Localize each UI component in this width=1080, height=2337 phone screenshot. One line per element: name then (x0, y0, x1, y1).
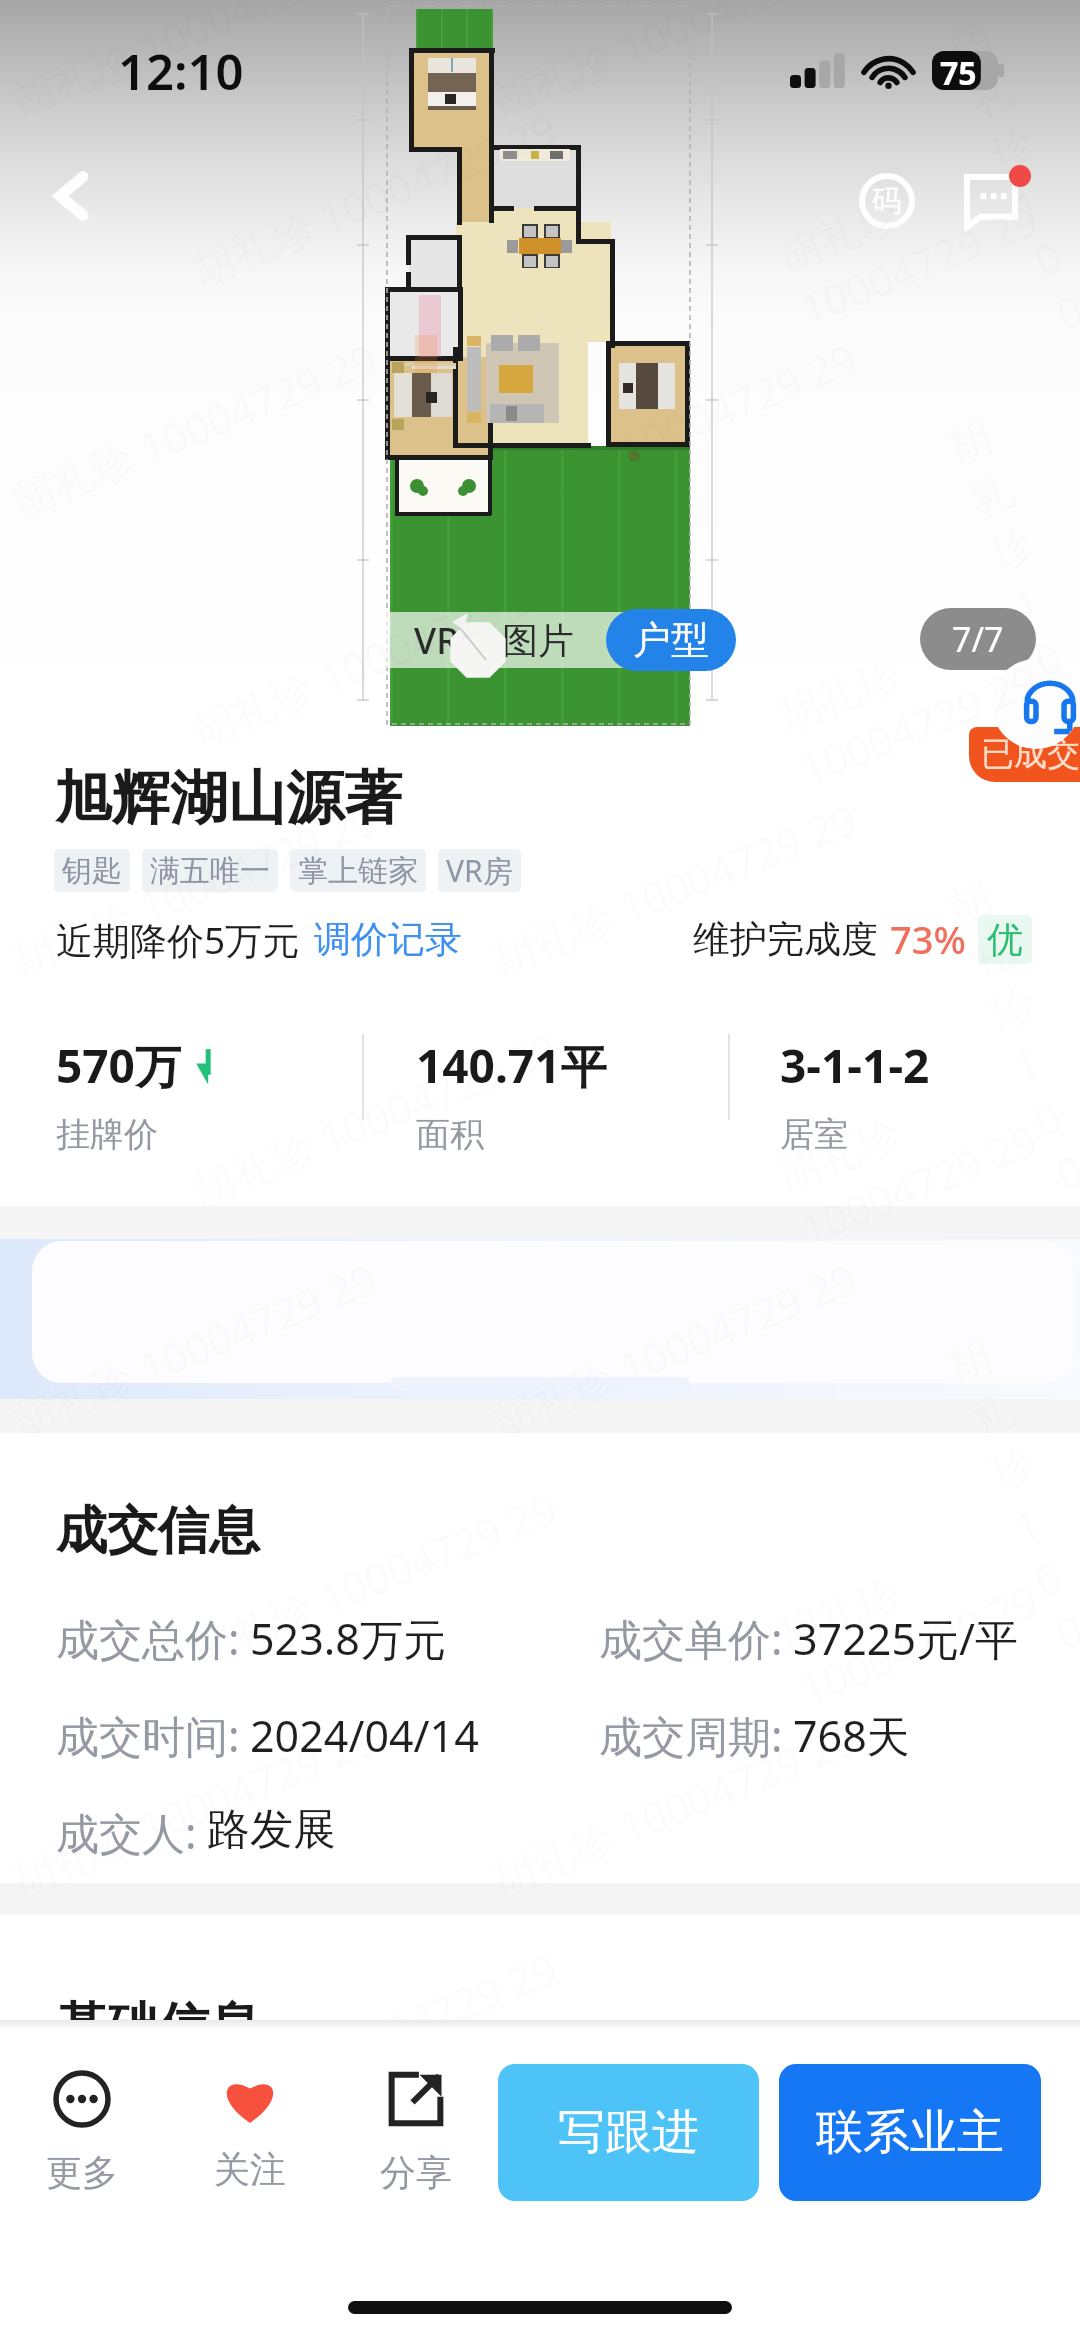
button[interactable]: Back (24, 148, 120, 244)
staticText: 胡礼珍 10004729 29 (3, 2169, 385, 2337)
staticText: 胡礼珍 10004729 29 (183, 1479, 565, 1678)
staticText: 胡礼珍 10004729 29 (3, 0, 385, 128)
staticText: 胡礼珍 10004729 29 (3, 329, 385, 528)
staticText: 成交人: (56, 1803, 197, 1862)
staticText: 更多 (46, 2150, 118, 2195)
staticText: 钥匙 (62, 852, 122, 890)
staticText: 旭辉湖山源著 (54, 762, 402, 835)
staticText: 成交信息 (56, 1499, 260, 1563)
staticText: 胡礼珍 10004729 29 (483, 789, 865, 988)
staticText: 图片 (502, 618, 574, 663)
button[interactable]: 满五唯一 (150, 849, 270, 892)
staticText: 成交时间: (56, 1706, 240, 1765)
staticText: 胡礼珍 10004729 29 (183, 1939, 565, 2138)
button[interactable]: 户型 (606, 609, 736, 671)
button[interactable]: QR code (845, 159, 929, 243)
staticText: 胡礼珍 10004729 29 (769, 1958, 1080, 2178)
staticText: 3-1-1-2 (780, 1034, 930, 1097)
button[interactable]: 联系业主 (779, 2064, 1041, 2201)
staticText: 12:10 (118, 38, 244, 105)
staticText: 居室 (780, 1113, 848, 1156)
staticText: 570万 (56, 1034, 181, 1097)
staticText: 联系业主 (816, 2103, 1004, 2162)
staticText: 胡礼珍 10004729 29 (769, 1038, 1080, 1258)
button[interactable]: VR (386, 612, 487, 668)
staticText: 分享 (380, 2150, 452, 2195)
staticText: 码 (872, 182, 902, 220)
staticText: 路发展 (207, 1803, 336, 1857)
button[interactable]: 写跟进 (498, 2064, 759, 2201)
staticText: 胡礼珍 10004729 29 (3, 1249, 385, 1448)
button[interactable]: 图片 (487, 612, 589, 668)
staticText: 胡礼珍 10004729 29 (3, 1709, 385, 1908)
staticText: 胡礼珍 10004729 29 (483, 2169, 865, 2337)
staticText: 胡礼珍 10004729 29 (183, 1019, 565, 1218)
button[interactable]: VR房 (446, 849, 513, 892)
staticText: 胡礼珍 10004729 29 (769, 118, 1080, 338)
button[interactable]: 分享 (350, 2030, 482, 2234)
staticText: 胡礼珍 10004729 29 (769, 1498, 1080, 1718)
button[interactable]: 调价记录 (314, 916, 462, 963)
staticText: VR (414, 616, 459, 665)
staticText: 成交总价: (56, 1609, 240, 1668)
staticText: 胡礼珍 10004729 29 (183, 559, 565, 758)
staticText: 胡礼珍 10004729 29 (3, 789, 385, 988)
staticText: 近期降价5万元 (56, 914, 300, 965)
staticText: 维护完成度 (693, 916, 878, 963)
staticText: 关注 (214, 2147, 286, 2192)
staticText: VR房 (446, 850, 513, 891)
staticText: 胡礼珍 10004729 29 (483, 1249, 865, 1448)
staticText: 成交单价: (599, 1609, 783, 1668)
staticText: 140.71平 (416, 1034, 607, 1097)
staticText: 面积 (416, 1113, 484, 1156)
staticText: 73% (890, 913, 966, 965)
staticText: 基础信息 (56, 1995, 260, 2059)
staticText: 2024/04/14 (250, 1706, 479, 1765)
staticText: 75 (940, 51, 977, 89)
staticText: 掌上链家 (298, 852, 418, 890)
staticText: 已成交 (981, 733, 1080, 775)
staticText: 优 (987, 917, 1023, 962)
staticText: 523.8万元 (250, 1609, 446, 1668)
staticText: 户型 (633, 616, 709, 664)
button[interactable]: 钥匙 (62, 849, 122, 892)
staticText: 满五唯一 (150, 852, 270, 890)
staticText: 挂牌价 (56, 1113, 158, 1156)
staticText: 成交周期: (599, 1706, 783, 1765)
staticText: 胡礼珍 10004729 29 (183, 99, 565, 298)
button[interactable]: 关注 (150, 2030, 350, 2234)
button[interactable]: 掌上链家 (298, 849, 418, 892)
staticText: 调价记录 (314, 916, 462, 963)
button[interactable]: Messages (955, 159, 1039, 243)
staticText: 写跟进 (558, 2103, 699, 2162)
staticText: 胡礼珍 10004729 29 (769, 578, 1080, 798)
staticText: 胡礼珍 10004729 29 (483, 0, 865, 128)
staticText: 胡礼珍 10004729 29 (483, 329, 865, 528)
staticText: 胡礼珍 10004729 29 (483, 1709, 865, 1908)
button[interactable]: Customer service (992, 659, 1080, 749)
button[interactable]: 更多 (14, 2030, 150, 2234)
staticText: 768天 (793, 1706, 910, 1765)
staticText: 7/7 (952, 616, 1004, 662)
staticText: 37225元/平 (793, 1609, 1018, 1668)
